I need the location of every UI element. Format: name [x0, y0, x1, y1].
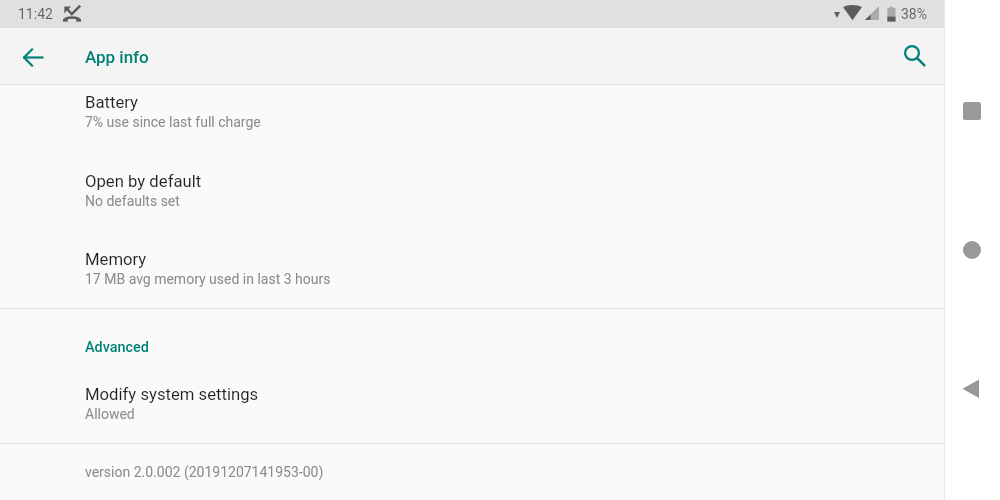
staticText: Memory	[85, 250, 147, 270]
staticText: version 2.0.002 (20191207141953-00)	[85, 464, 324, 480]
staticText: App info	[85, 47, 149, 67]
staticText: 11:42	[18, 6, 53, 22]
staticText: No defaults set	[85, 193, 180, 209]
button[interactable]: Memory	[0, 237, 944, 287]
button[interactable]: Search	[894, 35, 938, 79]
staticText: 17 MB avg memory used in last 3 hours	[85, 271, 331, 287]
button[interactable]: Advanced	[0, 326, 944, 356]
staticText: Advanced	[85, 339, 149, 356]
button[interactable]: Battery	[0, 80, 944, 130]
button[interactable]: Back	[962, 379, 983, 400]
staticText: Allowed	[85, 406, 135, 422]
button[interactable]: Modify system settings	[0, 372, 944, 422]
staticText: Modify system settings	[85, 385, 259, 405]
button[interactable]: Navigate up	[9, 33, 57, 81]
button[interactable]: Overview	[963, 102, 981, 120]
button[interactable]: Home	[963, 241, 981, 259]
staticText: Battery	[85, 93, 138, 113]
staticText: Open by default	[85, 172, 202, 192]
staticText: 7% use since last full charge	[85, 114, 261, 130]
staticText: 38%	[901, 6, 927, 22]
button[interactable]: Open by default	[0, 159, 944, 209]
